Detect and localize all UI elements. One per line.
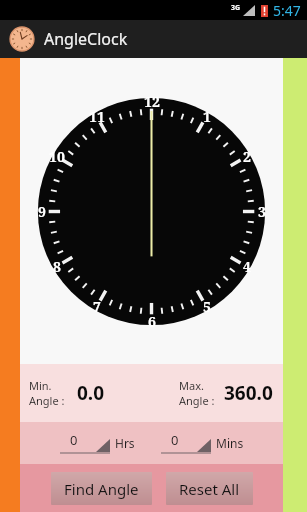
staticText: 12 xyxy=(144,92,160,111)
staticText: AngleClock xyxy=(44,28,128,50)
button[interactable]: Reset All xyxy=(166,472,253,505)
staticText: 2 xyxy=(243,147,251,166)
button[interactable]: 0 xyxy=(60,429,135,457)
staticText: 3G xyxy=(231,3,241,13)
staticText: Angle : xyxy=(179,393,215,408)
staticText: 7 xyxy=(93,297,101,316)
staticText: Hrs xyxy=(115,435,135,451)
staticText: Min. xyxy=(29,378,52,393)
staticText: Reset All xyxy=(179,479,240,499)
staticText: Find Angle xyxy=(64,479,139,499)
staticText: Angle : xyxy=(29,393,65,408)
staticText: 0 xyxy=(171,431,179,449)
staticText: 6 xyxy=(148,312,156,331)
staticText: 1 xyxy=(203,107,211,126)
staticText: 5 xyxy=(203,297,211,316)
staticText: 360.0 xyxy=(224,380,273,406)
staticText: 10 xyxy=(49,147,65,166)
staticText: 9 xyxy=(38,202,46,221)
staticText: 4 xyxy=(243,257,251,276)
button[interactable]: Find Angle xyxy=(51,472,152,505)
staticText: 11 xyxy=(89,107,105,126)
staticText: Max. xyxy=(179,378,204,393)
staticText: 5:47 xyxy=(273,1,301,20)
staticText: 8 xyxy=(53,257,61,276)
staticText: Mins xyxy=(216,435,244,451)
staticText: 3 xyxy=(258,202,266,221)
staticText: 0 xyxy=(70,431,78,449)
button[interactable]: 0 xyxy=(161,429,244,457)
other: App icon xyxy=(10,27,34,51)
staticText: 0.0 xyxy=(77,380,105,406)
